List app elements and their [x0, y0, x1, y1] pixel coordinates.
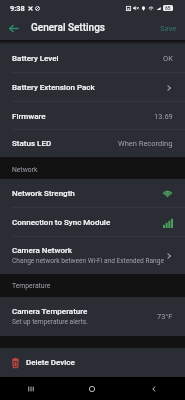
staticText: Network — [12, 166, 38, 174]
button[interactable]: Home — [61, 377, 123, 400]
button[interactable]: Network Strength — [0, 179, 185, 208]
staticText: 9:38 — [10, 4, 25, 13]
button[interactable]: Status LED — [0, 130, 185, 157]
button[interactable]: Connection to Sync Module — [0, 208, 185, 237]
staticText: Temperature — [12, 282, 51, 290]
staticText: When Recording — [118, 139, 173, 148]
button[interactable]: Save — [150, 19, 185, 38]
staticText: Change network between Wi-Fi and Extende… — [12, 257, 164, 265]
staticText: 13.69 — [154, 112, 173, 121]
staticText: 65 — [165, 5, 171, 11]
button[interactable]: Battery Extension Pack — [0, 73, 185, 102]
staticText: Battery Level — [12, 54, 59, 63]
button[interactable]: Back — [0, 16, 26, 40]
staticText: Firmware — [12, 112, 46, 121]
button[interactable]: Back — [123, 377, 185, 400]
button[interactable]: Battery Level — [0, 44, 185, 73]
button[interactable]: Camera Temperature — [0, 297, 185, 336]
staticText: Set up temperature alerts. — [12, 318, 88, 326]
staticText: Network Strength — [12, 189, 75, 198]
staticText: 73°F — [157, 312, 173, 321]
staticText: Connection to Sync Module — [12, 218, 111, 227]
button[interactable]: Firmware — [0, 102, 185, 130]
staticText: Camera Temperature — [12, 307, 88, 316]
button[interactable]: Recent apps — [0, 377, 61, 400]
staticText: Save — [160, 24, 177, 33]
staticText: OK — [163, 54, 173, 63]
button[interactable]: Camera Network — [0, 237, 185, 274]
staticText: Battery Extension Pack — [12, 83, 95, 92]
button[interactable]: Delete Device — [0, 348, 185, 377]
staticText: Delete Device — [26, 358, 75, 367]
staticText: Status LED — [12, 139, 52, 148]
staticText: Camera Network — [12, 246, 72, 255]
staticText: General Settings — [31, 22, 105, 34]
